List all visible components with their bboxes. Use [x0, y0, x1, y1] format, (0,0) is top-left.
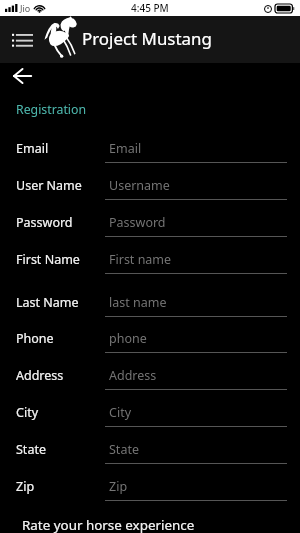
- staticText: City: [16, 404, 105, 421]
- staticText: 4:45 PM: [131, 1, 169, 15]
- staticText: Username: [109, 177, 170, 194]
- staticText: Registration: [16, 101, 87, 118]
- button[interactable]: City: [0, 404, 300, 434]
- staticText: last name: [109, 294, 167, 311]
- staticText: Email: [16, 140, 105, 157]
- staticText: State: [109, 441, 139, 458]
- staticText: Project Mustang: [82, 27, 212, 50]
- button[interactable]: Address: [0, 367, 300, 397]
- staticText: Password: [16, 214, 105, 231]
- staticText: Jio: [20, 2, 31, 14]
- staticText: phone: [109, 330, 147, 347]
- staticText: State: [16, 441, 105, 458]
- staticText: Zip: [109, 478, 128, 495]
- button[interactable]: User Name: [0, 177, 300, 207]
- button[interactable]: State: [0, 441, 300, 471]
- staticText: City: [109, 404, 132, 421]
- button[interactable]: Phone: [0, 330, 300, 360]
- staticText: Password: [109, 214, 166, 231]
- staticText: Zip: [16, 478, 105, 495]
- button[interactable]: First Name: [0, 251, 300, 281]
- staticText: Rate your horse experience: [22, 516, 195, 533]
- staticText: Phone: [16, 330, 105, 347]
- staticText: Address: [16, 367, 105, 384]
- staticText: User Name: [16, 177, 105, 194]
- staticText: First name: [109, 251, 172, 268]
- staticText: First Name: [16, 251, 105, 268]
- button[interactable]: Password: [0, 214, 300, 244]
- button[interactable]: Email: [0, 140, 300, 170]
- staticText: Last Name: [16, 294, 105, 311]
- button[interactable]: Zip: [0, 478, 300, 508]
- staticText: Address: [109, 367, 157, 384]
- button[interactable]: Back: [2, 62, 42, 89]
- staticText: Email: [109, 140, 142, 157]
- button[interactable]: Menu: [0, 16, 36, 63]
- button[interactable]: Last Name: [0, 294, 300, 324]
